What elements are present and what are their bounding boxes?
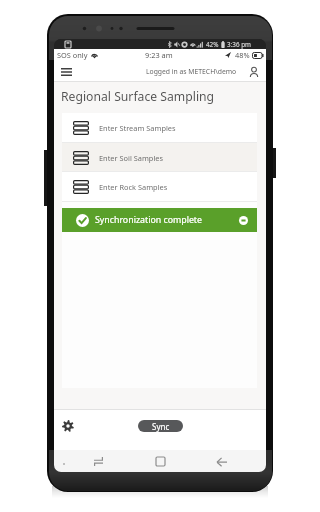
- button[interactable]: Sync: [138, 420, 183, 432]
- staticText: Synchronization complete: [95, 214, 203, 226]
- staticText: 42%: [206, 40, 219, 49]
- button[interactable]: Dismiss: [239, 216, 248, 225]
- button[interactable]: Menu: [58, 63, 75, 80]
- button[interactable]: Account: [247, 65, 261, 79]
- staticText: Regional Surface Sampling: [61, 88, 215, 105]
- staticText: Enter Stream Samples: [99, 123, 176, 133]
- button[interactable]: Synchronization complete: [62, 208, 257, 232]
- button[interactable]: Enter Rock Samples: [62, 172, 257, 202]
- button[interactable]: Settings: [58, 416, 78, 436]
- staticText: Enter Soil Samples: [99, 153, 164, 163]
- button[interactable]: Enter Soil Samples: [62, 143, 257, 172]
- staticText: Enter Rock Samples: [99, 182, 168, 192]
- button[interactable]: Home: [124, 450, 196, 472]
- staticText: SOS only: [57, 50, 88, 60]
- staticText: Logged in as METECH\demo: [146, 67, 237, 76]
- staticText: 3:36 pm: [227, 40, 251, 49]
- button[interactable]: Recents: [72, 450, 124, 472]
- staticText: 9:23 am: [145, 50, 173, 60]
- staticText: Sync: [152, 421, 170, 432]
- staticText: 48%: [235, 50, 250, 60]
- button[interactable]: Back: [196, 450, 248, 472]
- button[interactable]: Enter Stream Samples: [62, 113, 257, 143]
